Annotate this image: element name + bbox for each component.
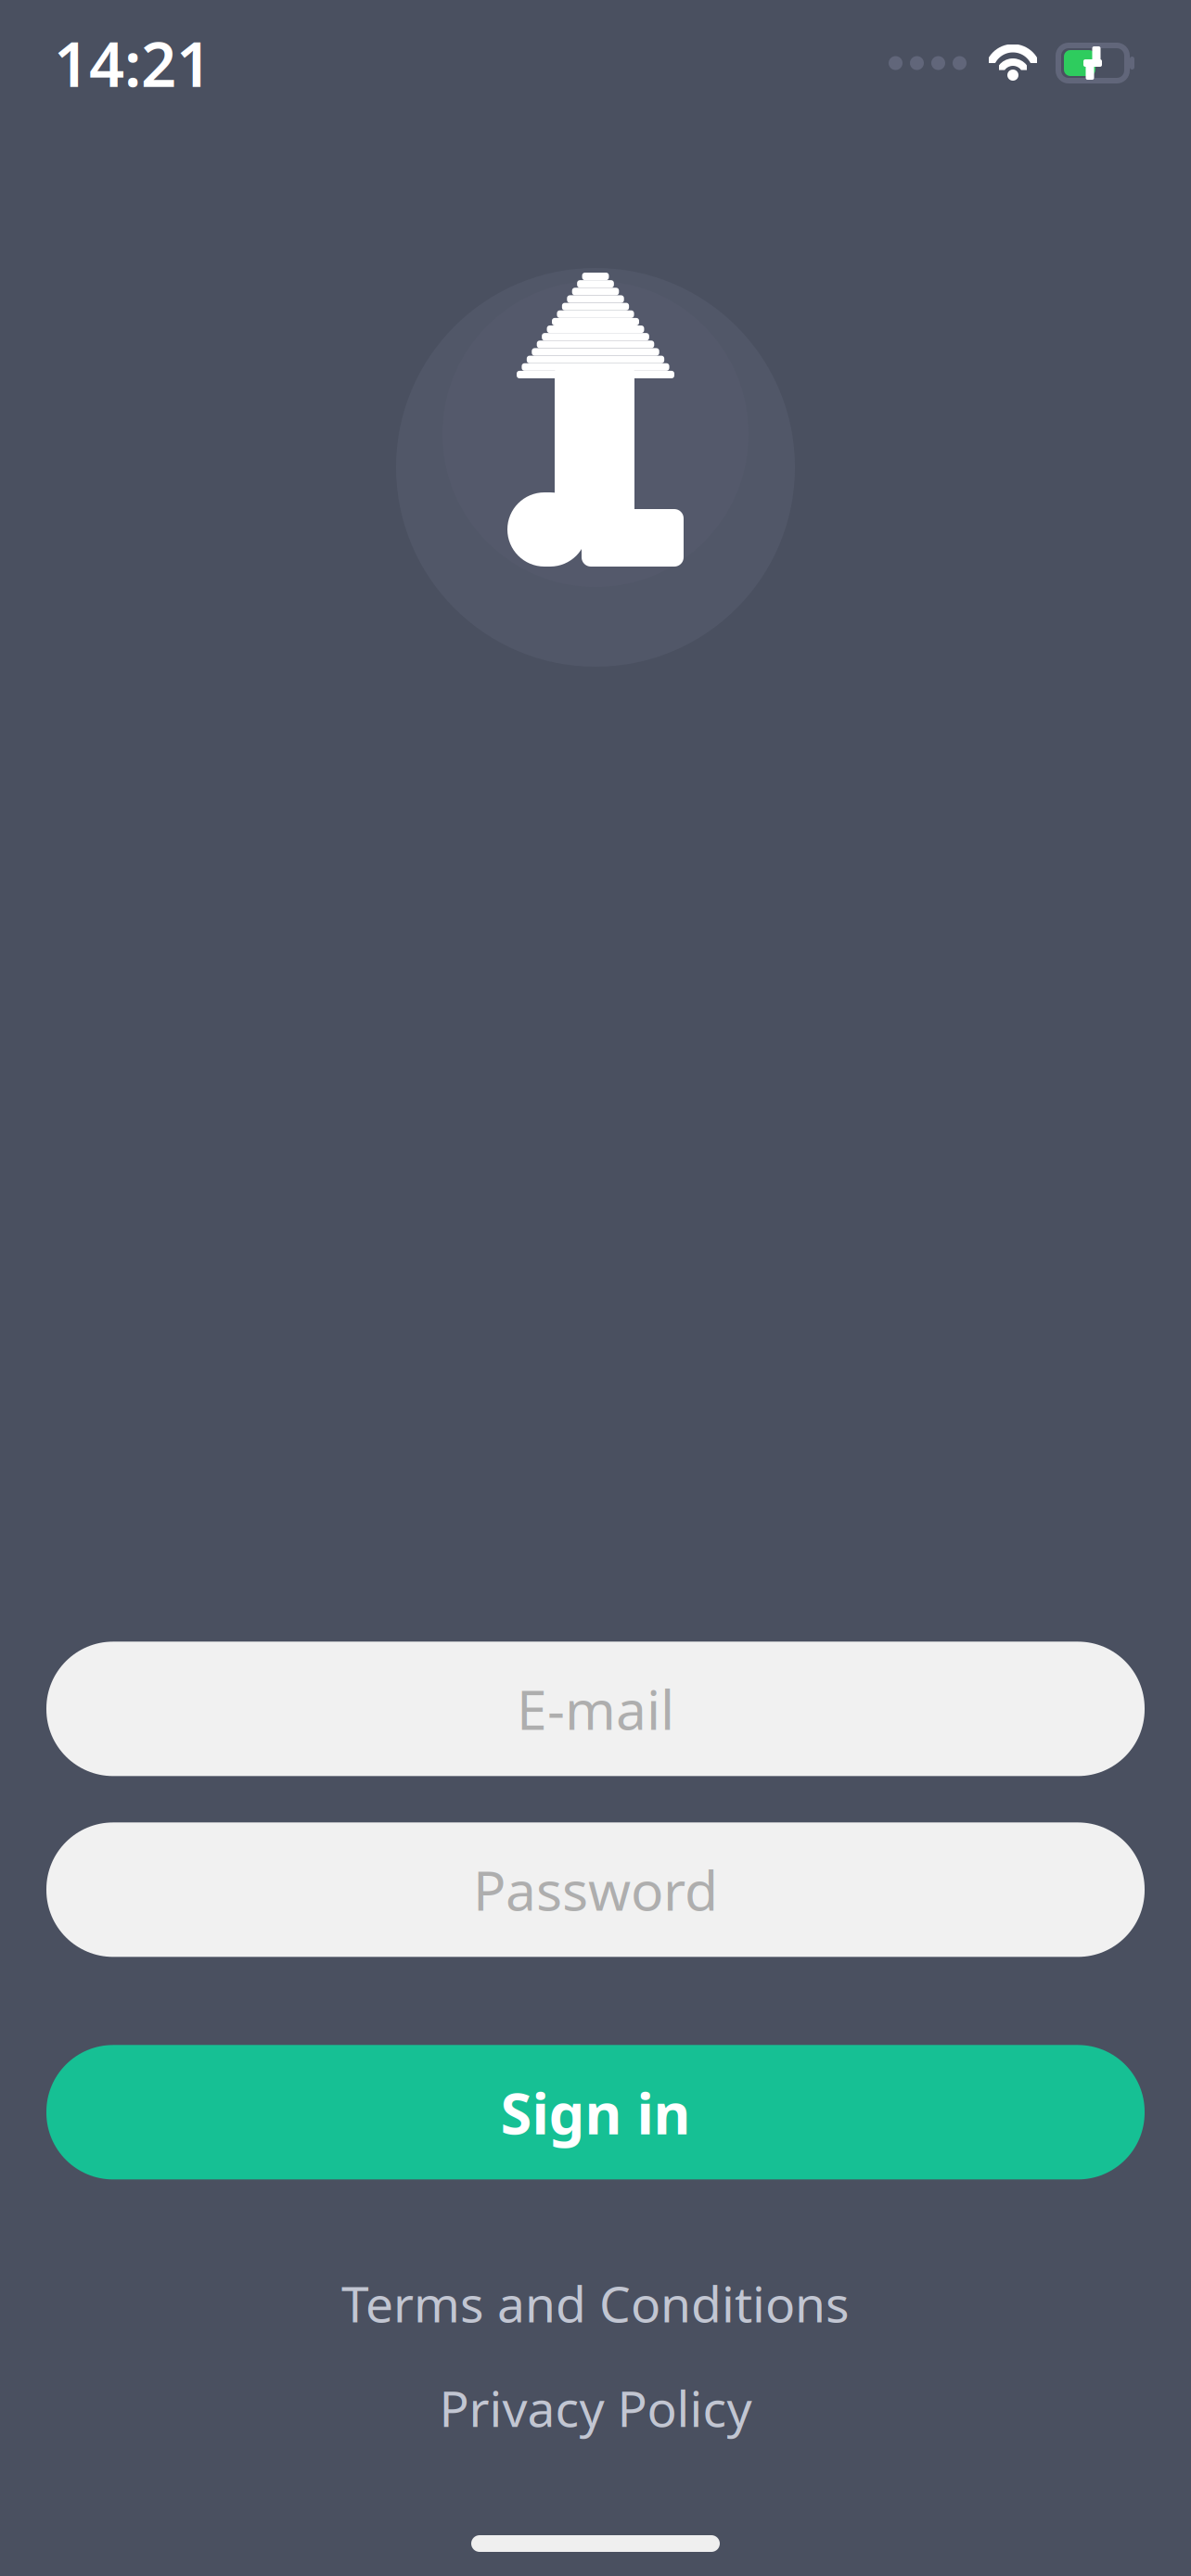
staticText: E-mail bbox=[517, 1673, 674, 1745]
button[interactable]: Privacy Policy bbox=[417, 2366, 774, 2450]
button[interactable]: Sign in bbox=[46, 2045, 1145, 2179]
staticText: 14:21 bbox=[54, 22, 211, 104]
staticText: Password bbox=[473, 1854, 718, 1926]
staticText: Sign in bbox=[500, 2074, 691, 2150]
button[interactable]: Password bbox=[46, 1822, 1145, 1957]
button[interactable]: E-mail bbox=[46, 1642, 1145, 1776]
staticText: Privacy Policy bbox=[439, 2375, 752, 2441]
button[interactable]: Terms and Conditions bbox=[319, 2261, 872, 2345]
staticText: Terms and Conditions bbox=[341, 2270, 850, 2336]
